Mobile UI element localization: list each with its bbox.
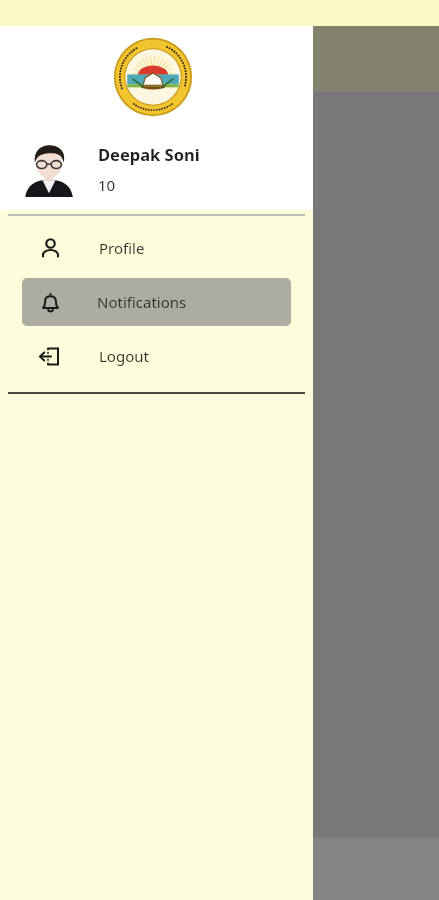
- button[interactable]: Profile: [22, 224, 291, 272]
- staticText: Notifications: [97, 292, 187, 312]
- button[interactable]: Deepak Soni: [0, 128, 313, 210]
- staticText: 10: [98, 175, 116, 195]
- button[interactable]: Logout: [22, 332, 291, 380]
- button[interactable]: Notifications: [22, 278, 291, 326]
- staticText: Deepak Soni: [98, 143, 200, 165]
- staticText: Profile: [99, 238, 145, 258]
- staticText: Logout: [99, 346, 149, 366]
